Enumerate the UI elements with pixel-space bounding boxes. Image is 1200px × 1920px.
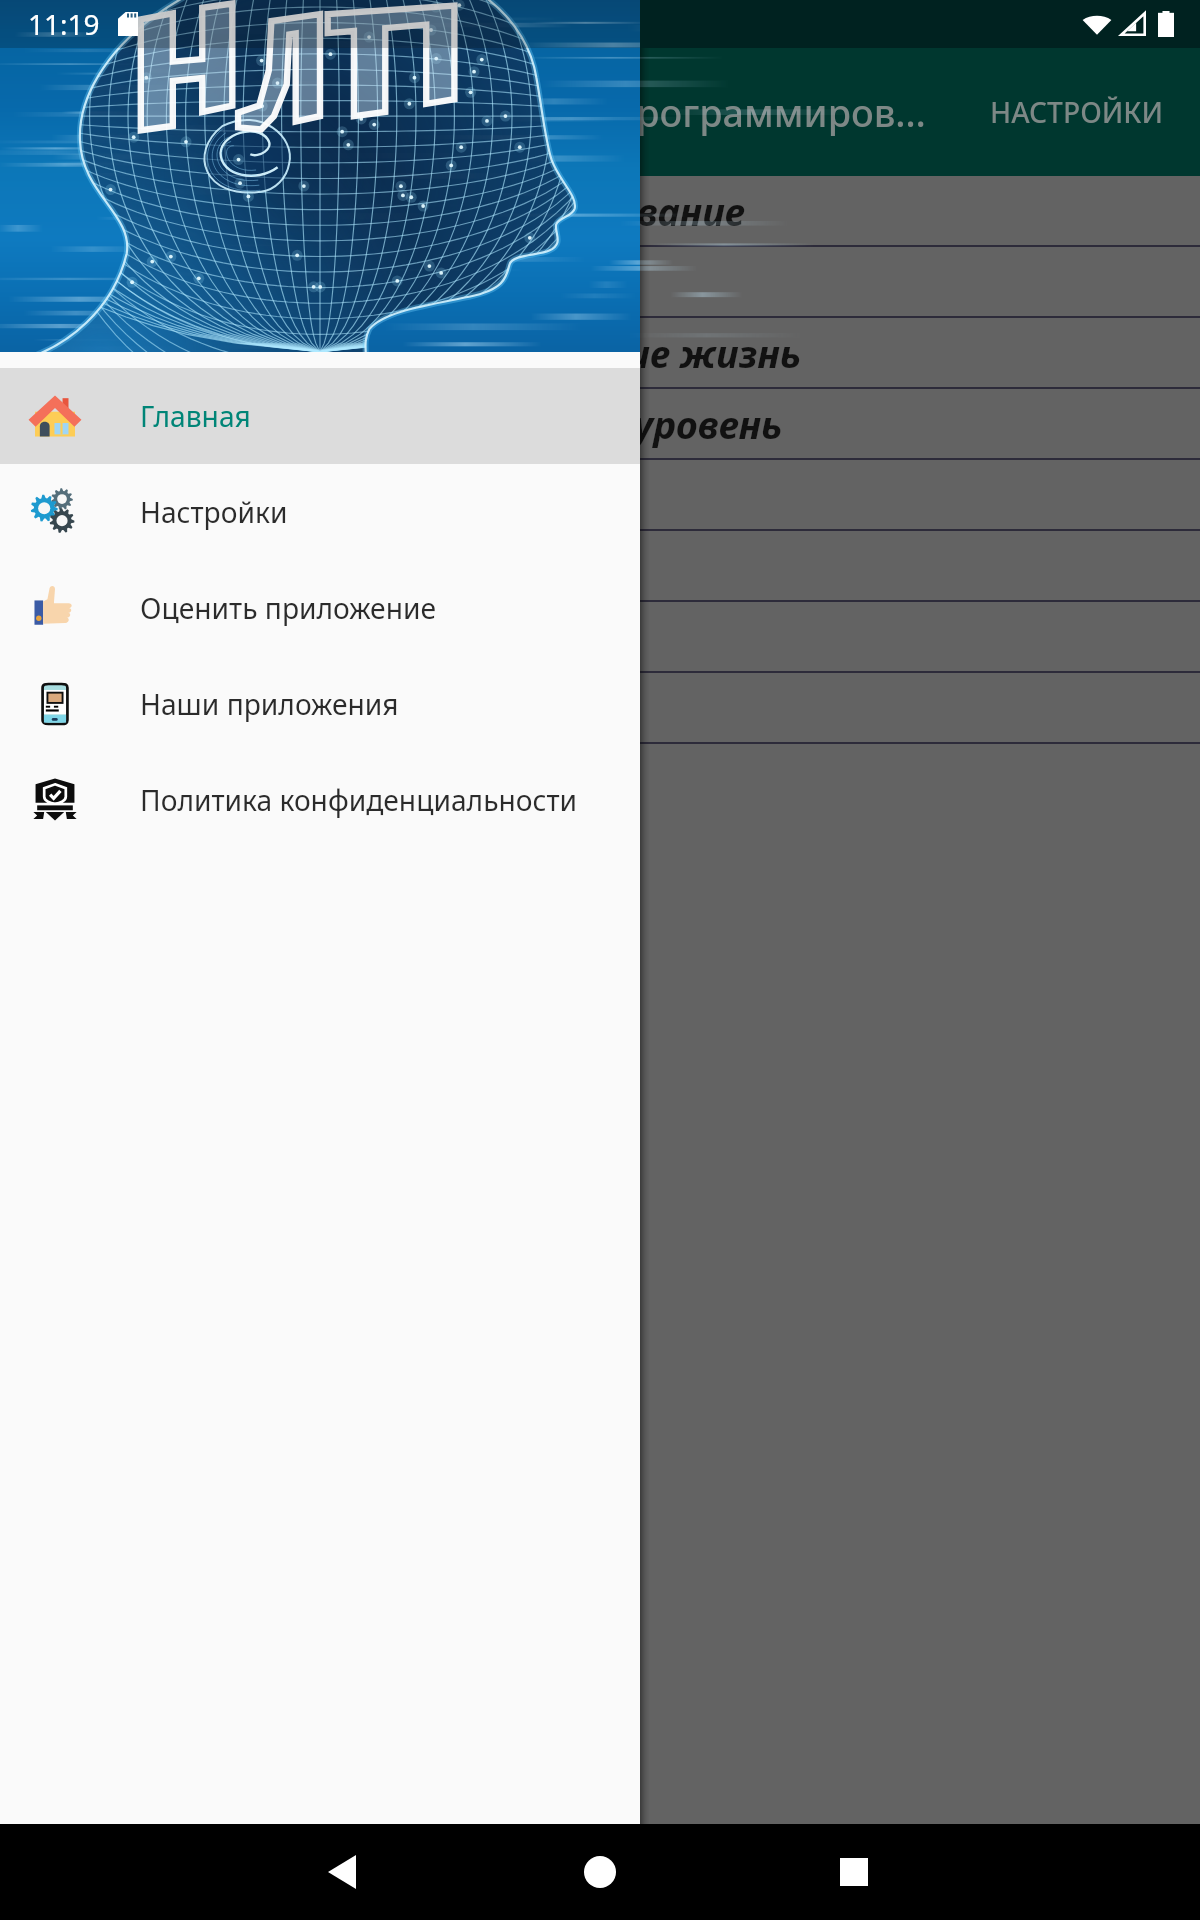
- staticText: Настройки: [140, 493, 288, 531]
- button[interactable]: НАСТРОЙКИ: [964, 69, 1200, 155]
- button[interactable]: Recents: [806, 1824, 902, 1920]
- staticText: Что такое НЛП: [32, 256, 329, 308]
- button[interactable]: Нейролингвистическое программирование: [0, 176, 1200, 245]
- staticText: Главная: [140, 397, 251, 435]
- button[interactable]: Метамодель языка: [0, 673, 1200, 742]
- staticText: Рефрейминг: [32, 540, 259, 592]
- staticText: Метамодель языка: [32, 682, 401, 734]
- button[interactable]: Что такое НЛП: [0, 247, 1200, 316]
- button[interactable]: Политика конфиденциальности: [0, 752, 640, 848]
- staticText: Техники НЛП: [32, 469, 266, 521]
- staticText: 11:19: [28, 5, 100, 43]
- button[interactable]: Рефрейминг: [0, 531, 1200, 600]
- button[interactable]: Техники НЛП: [0, 460, 1200, 529]
- button[interactable]: НЛП выводит общение на новый уровень: [0, 389, 1200, 458]
- staticText: Политика конфиденциальности: [140, 781, 578, 819]
- staticText: Нейролингвистическое программирование: [0, 185, 745, 237]
- button[interactable]: Психология НЛП: техники, меняющие жизнь: [0, 318, 1200, 387]
- button[interactable]: Настройки: [0, 464, 640, 560]
- button[interactable]: Home: [552, 1824, 648, 1920]
- staticText: НАСТРОЙКИ: [990, 93, 1164, 131]
- button[interactable]: Наши приложения: [0, 656, 640, 752]
- button[interactable]: Back: [294, 1824, 390, 1920]
- staticText: Психология НЛП: техники, меняющие жизнь: [0, 327, 801, 379]
- button[interactable]: Якорение в НЛП: [0, 602, 1200, 671]
- staticText: НЛП выводит общение на новый уровень: [8, 398, 782, 450]
- button[interactable]: Главная: [0, 368, 640, 464]
- button[interactable]: Оценить приложение: [0, 560, 640, 656]
- staticText: Якорение в НЛП: [32, 611, 325, 663]
- staticText: Нейролингвистическое программиров…: [162, 87, 926, 138]
- staticText: Оценить приложение: [140, 589, 436, 627]
- staticText: Наши приложения: [140, 685, 399, 723]
